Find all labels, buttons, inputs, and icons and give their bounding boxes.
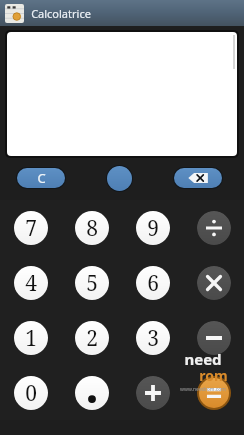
staticText: www.needrom.com — [180, 386, 226, 393]
button[interactable]: Equals — [199, 378, 229, 408]
button[interactable]: 1 — [14, 321, 48, 355]
button[interactable]: 5 — [75, 266, 109, 300]
staticText: C — [37, 169, 46, 187]
button[interactable]: Menu — [107, 166, 132, 191]
button[interactable]: Decimal point — [75, 376, 109, 410]
staticText: 8 — [86, 214, 98, 243]
button[interactable]: C — [17, 168, 65, 188]
staticText: 5 — [86, 269, 98, 298]
button[interactable]: 7 — [14, 211, 48, 245]
button[interactable]: 6 — [136, 266, 170, 300]
staticText: 9 — [147, 214, 159, 243]
staticText: rom — [199, 366, 228, 385]
staticText: Calcolatrice — [31, 6, 91, 21]
button[interactable]: 2 — [75, 321, 109, 355]
button[interactable]: Divide — [197, 211, 231, 245]
staticText: 4 — [25, 269, 37, 298]
button[interactable]: 3 — [136, 321, 170, 355]
staticText: 1 — [25, 324, 37, 353]
button[interactable]: Subtract — [197, 321, 231, 355]
button[interactable]: Add — [136, 376, 170, 410]
staticText: 6 — [147, 269, 159, 298]
staticText: 0 — [25, 379, 37, 408]
staticText: 2 — [86, 324, 98, 353]
button[interactable]: Multiply — [197, 266, 231, 300]
button[interactable]: 0 — [14, 376, 48, 410]
button[interactable]: 8 — [75, 211, 109, 245]
button[interactable]: 9 — [136, 211, 170, 245]
staticText: 7 — [25, 214, 37, 243]
button[interactable]: Backspace — [174, 168, 222, 188]
staticText: 3 — [147, 324, 159, 353]
staticText: need — [184, 349, 222, 369]
button[interactable]: 4 — [14, 266, 48, 300]
